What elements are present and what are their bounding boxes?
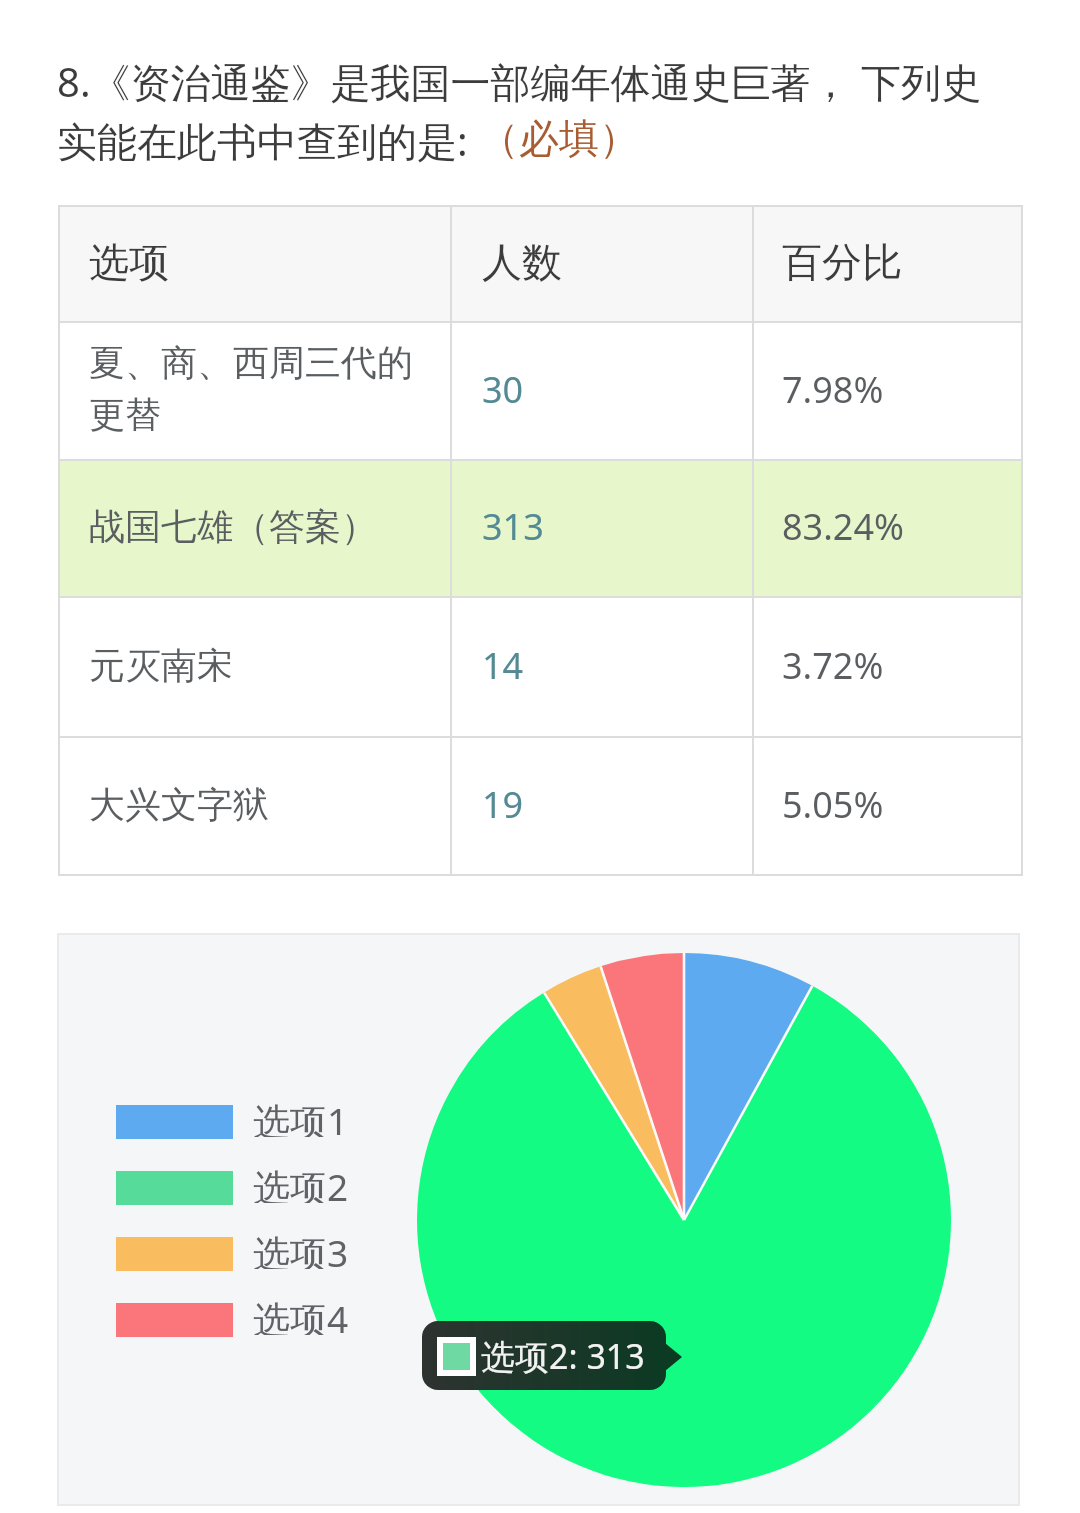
staticText: 选项3	[253, 1227, 349, 1269]
button[interactable]: 选项2: 313	[422, 1321, 666, 1390]
button[interactable]: 元灭南宋	[60, 598, 1021, 736]
button[interactable]: 选项2	[116, 1167, 349, 1209]
staticText: 83.24%	[782, 502, 904, 551]
staticText: 选项4	[253, 1293, 349, 1335]
staticText: 元灭南宋	[89, 643, 233, 688]
staticText: 5.05%	[782, 780, 884, 829]
button[interactable]: 夏、商、西周三代的更替	[60, 323, 1021, 459]
staticText: 7.98%	[782, 365, 884, 414]
button[interactable]: 战国七雄（答案）	[60, 461, 1021, 596]
staticText: 实能在此书中查到的是:	[57, 113, 479, 168]
staticText: 大兴文字狱	[89, 782, 269, 827]
button[interactable]: 大兴文字狱	[60, 738, 1021, 874]
staticText: 19	[482, 780, 524, 829]
button[interactable]: 选项3	[116, 1233, 349, 1275]
staticText: 人数	[482, 237, 562, 287]
staticText: 选项2: 313	[481, 1333, 645, 1379]
staticText: 3.72%	[782, 641, 884, 690]
staticText: 30	[482, 365, 524, 414]
button[interactable]: 选项4	[116, 1299, 349, 1341]
other: Pie chart of answer distribution	[57, 933, 1020, 1506]
staticText: 14	[482, 641, 524, 690]
button[interactable]: 选项	[60, 207, 1021, 321]
staticText: （必填）	[479, 113, 639, 163]
staticText: 战国七雄（答案）	[89, 504, 377, 549]
staticText: 8.《资治通鉴》是我国一部编年体通史巨著， 下列史	[57, 54, 981, 109]
staticText: 313	[482, 502, 544, 551]
staticText: 选项1	[253, 1095, 349, 1137]
button[interactable]: 选项1	[116, 1101, 349, 1143]
staticText: 百分比	[782, 237, 902, 287]
staticText: 夏、商、西周三代的更替	[89, 340, 440, 438]
staticText: 选项2	[253, 1161, 349, 1203]
staticText: 选项	[89, 237, 169, 287]
